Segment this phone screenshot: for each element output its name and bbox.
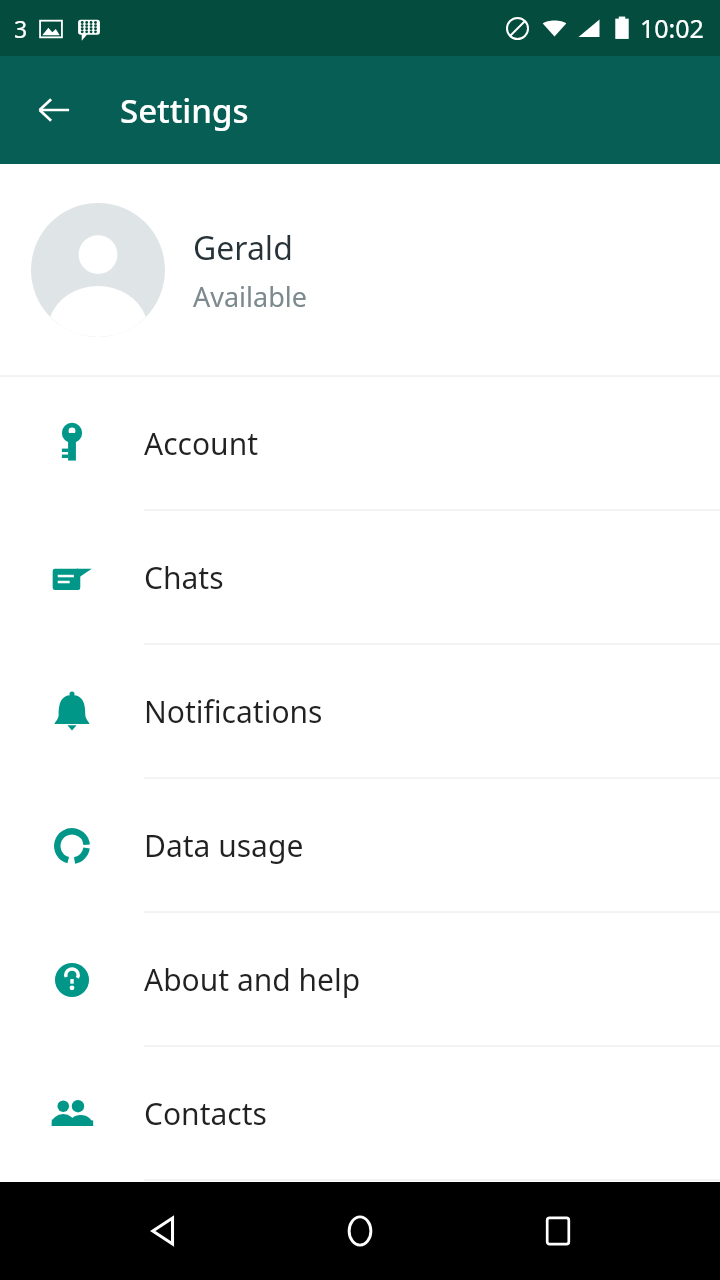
staticText: 10:02 <box>640 11 704 45</box>
staticText: Notifications <box>144 691 323 732</box>
staticText: Chats <box>144 557 224 598</box>
button[interactable]: Recents <box>523 1196 593 1266</box>
staticText: About and help <box>144 959 361 1000</box>
button[interactable]: Account <box>0 377 720 510</box>
staticText: Settings <box>120 88 249 133</box>
button[interactable]: Contacts <box>0 1047 720 1180</box>
button[interactable]: Data usage <box>0 779 720 912</box>
button[interactable]: Back <box>22 78 86 142</box>
staticText: 3 <box>14 13 28 44</box>
button[interactable]: Notifications <box>0 645 720 778</box>
staticText: Contacts <box>144 1093 267 1134</box>
staticText: Data usage <box>144 825 304 866</box>
staticText: Available <box>193 278 307 315</box>
button[interactable]: Gerald <box>0 164 720 376</box>
staticText: Gerald <box>193 226 293 270</box>
button[interactable]: Chats <box>0 511 720 644</box>
button[interactable]: Home <box>325 1196 395 1266</box>
staticText: Account <box>144 423 259 464</box>
button[interactable]: About and help <box>0 913 720 1046</box>
button[interactable]: Back <box>128 1196 198 1266</box>
